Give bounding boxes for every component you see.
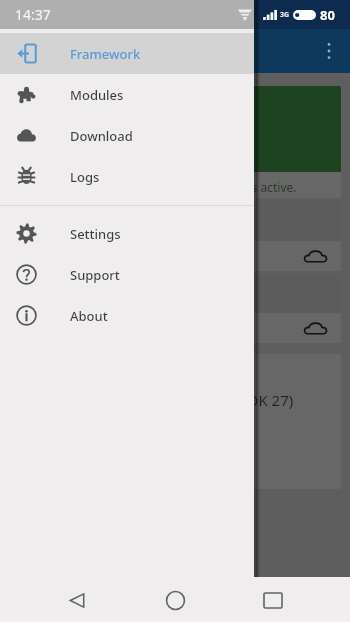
staticText: Download xyxy=(70,127,133,145)
button[interactable]: Xposed Framework xyxy=(9,276,341,343)
button[interactable]: Support xyxy=(0,254,254,295)
button[interactable]: Back xyxy=(56,579,98,621)
button[interactable]: Framework xyxy=(0,33,254,74)
staticText: Settings xyxy=(70,225,121,243)
staticText: Support xyxy=(70,266,120,284)
button[interactable]: More options xyxy=(311,33,347,69)
button[interactable]: Download xyxy=(300,241,330,271)
staticText: Xposed Installer xyxy=(19,209,110,225)
staticText: About xyxy=(70,307,108,325)
button[interactable]: Modules xyxy=(0,74,254,115)
button[interactable]: Android 8.1.0 (SDK 27) xyxy=(9,354,341,489)
button[interactable]: Home xyxy=(154,579,196,621)
button[interactable]: Recents xyxy=(252,579,294,621)
staticText: Framework xyxy=(70,45,141,63)
staticText: 14:37 xyxy=(15,5,51,24)
staticText: Logs xyxy=(70,168,100,186)
button[interactable]: About xyxy=(0,295,254,336)
button[interactable]: Xposed framework version 89 is active. xyxy=(9,86,341,198)
staticText: Android 8.1.0 (SDK 27) xyxy=(137,390,294,410)
staticText: Version 89 (SDK 27) xyxy=(19,321,110,335)
button[interactable]: Download xyxy=(0,115,254,156)
staticText: 80 xyxy=(320,6,335,24)
button[interactable]: Download xyxy=(300,313,330,343)
staticText: 3G xyxy=(280,10,290,20)
button[interactable]: Logs xyxy=(0,156,254,197)
button[interactable]: Xposed Installer xyxy=(9,200,341,271)
button[interactable]: Settings xyxy=(0,213,254,254)
staticText: Xposed framework version 89 is active. xyxy=(78,179,297,195)
staticText: Modules xyxy=(70,86,124,104)
